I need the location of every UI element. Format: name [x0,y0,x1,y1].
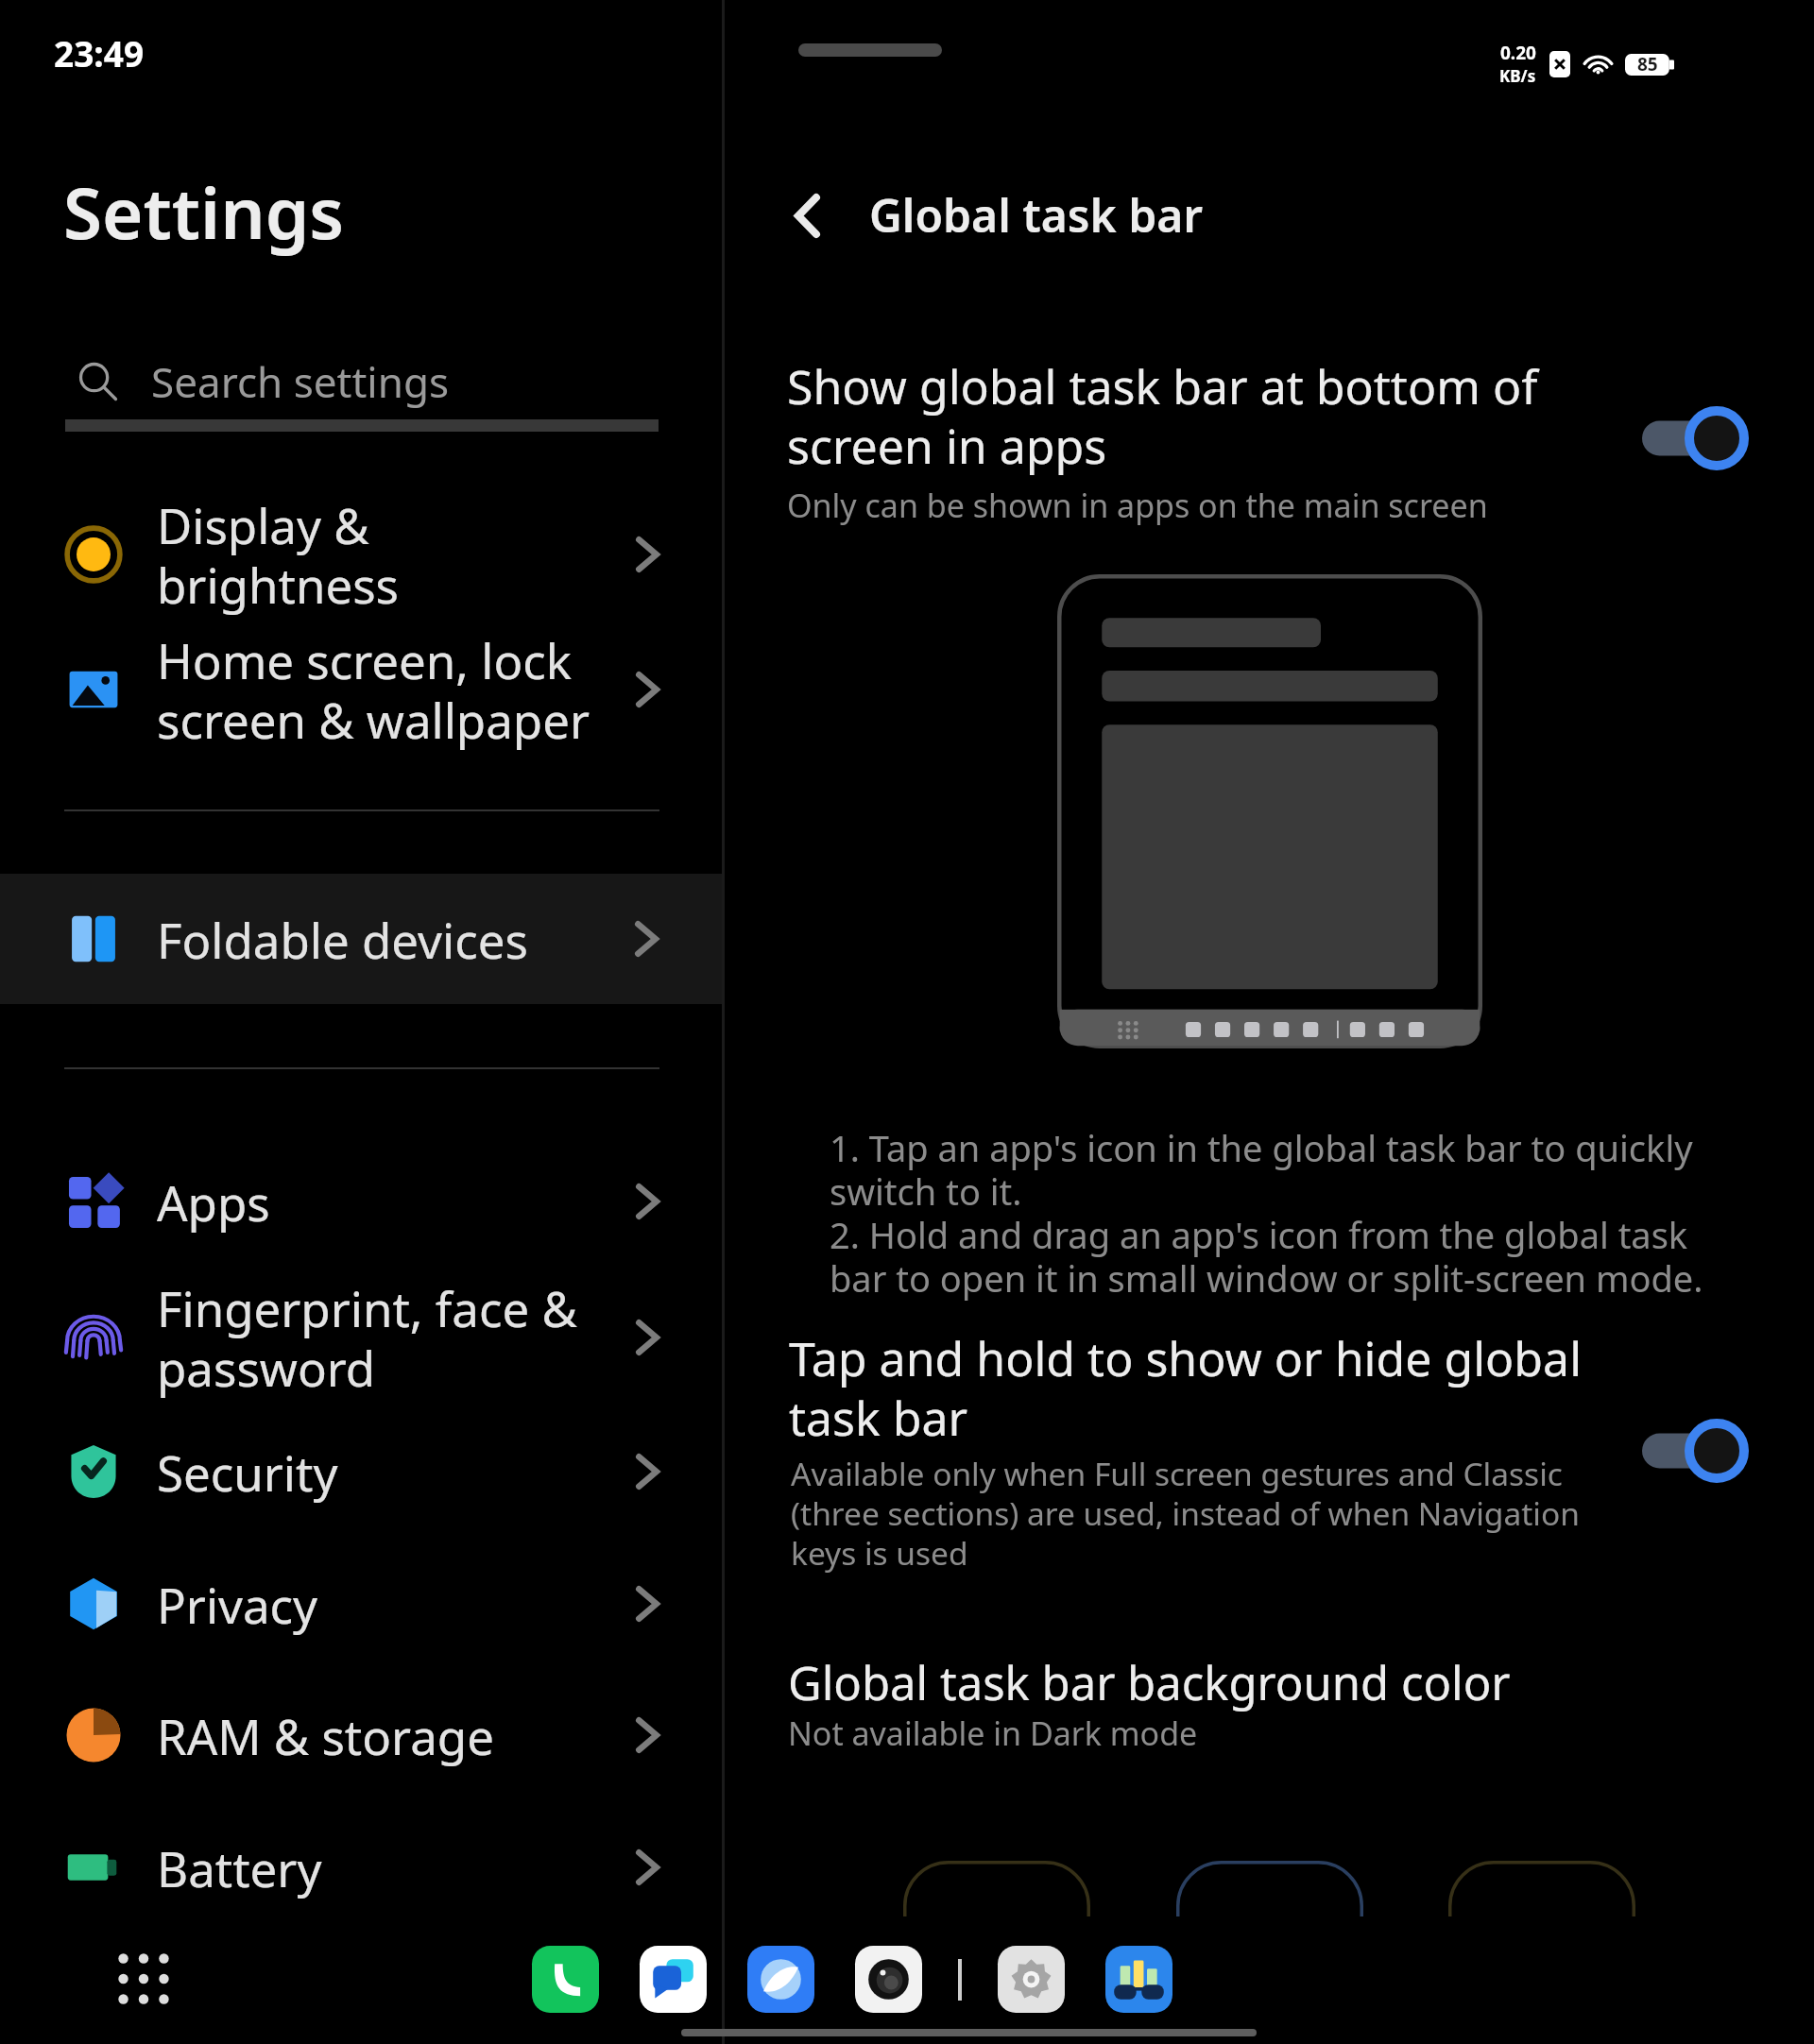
staticText: 1. Tap an app's icon in the global task … [830,1123,1703,1303]
button[interactable]: Security [64,1422,659,1521]
staticText: Privacy [157,1572,636,1637]
staticText: Security [157,1439,636,1505]
button[interactable]: Camera [855,1946,922,2013]
button[interactable]: Fingerprint, face & password [64,1268,659,1407]
staticText: Show global task bar at bottom of screen… [787,354,1685,477]
button[interactable]: Color option [1448,1861,1635,1916]
button[interactable]: Color option [1176,1861,1363,1916]
staticText: Global task bar [869,184,1204,246]
button[interactable] [744,1625,1792,1766]
button[interactable]: Messages [640,1946,707,2013]
staticText: Available only when Full screen gestures… [791,1452,1580,1575]
button[interactable]: Toggle on [1642,1418,1750,1484]
button[interactable]: Toggle on [1642,405,1750,471]
staticText: Not available in Dark mode [788,1712,1198,1755]
staticText: Display & brightness [157,492,636,618]
staticText: KB/s [1499,65,1536,87]
button[interactable]: Home screen, lock screen & wallpaper [64,620,659,759]
staticText: Battery [157,1835,636,1900]
button[interactable]: Settings [998,1946,1065,2013]
button[interactable]: Battery [64,1818,659,1916]
staticText: Tap and hold to show or hide global task… [789,1326,1686,1449]
staticText: Global task bar background color [788,1651,1511,1714]
button[interactable]: Display & brightness [64,485,659,624]
staticText: 23:49 [54,29,145,77]
staticText: RAM & storage [157,1703,636,1768]
staticText: Fingerprint, face & password [157,1275,636,1401]
button[interactable]: Apps [64,1152,659,1251]
button[interactable]: Color option [903,1861,1090,1916]
staticText: Only can be shown in apps on the main sc… [787,484,1488,527]
button[interactable]: Search settings [77,342,659,421]
staticText: 85 [1637,52,1658,77]
staticText: Settings [63,163,345,259]
staticText: Apps [157,1169,636,1235]
button[interactable]: Privacy [64,1555,659,1653]
staticText: Foldable devices [157,907,635,972]
button[interactable]: Back [767,176,847,255]
staticText: 0.20 [1500,41,1536,65]
button[interactable]: Browser [747,1946,814,2013]
button[interactable]: App drawer [106,1941,181,2017]
button[interactable]: Foldable devices [0,874,722,1004]
staticText: Home screen, lock screen & wallpaper [157,627,636,753]
staticText: Search settings [151,353,450,410]
button[interactable]: Stats [1105,1946,1172,2013]
button[interactable] [744,1303,1792,1559]
button[interactable]: RAM & storage [64,1686,659,1784]
button[interactable] [744,331,1792,538]
button[interactable]: Phone [532,1946,599,2013]
